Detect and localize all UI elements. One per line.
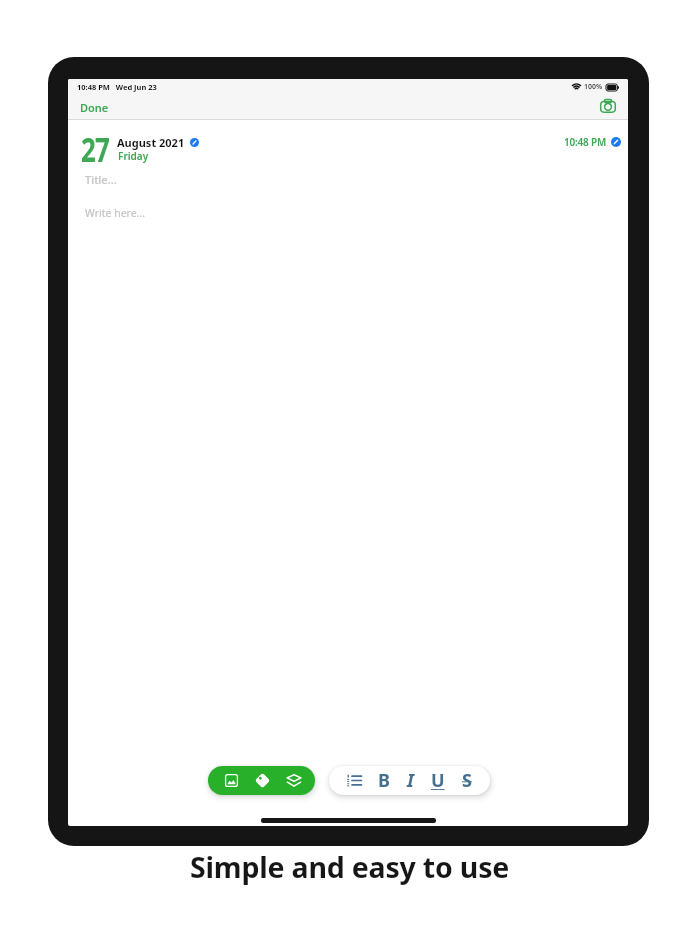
staticText: 27 [81,126,109,172]
staticText: Write here... [85,206,146,220]
staticText: 10:48 PM [564,135,607,149]
staticText: I [407,768,414,793]
staticText: Simple and easy to use [190,848,510,887]
staticText: 100% [584,82,603,92]
staticText: August 2021 [117,135,185,150]
button[interactable] [600,99,616,113]
staticText: Friday [118,149,149,163]
button[interactable] [208,766,315,795]
staticText: Done [80,100,109,115]
staticText: B [378,768,390,793]
staticText: Title... [85,172,117,187]
staticText: U [431,768,445,793]
staticText: 10:48 PM Wed Jun 23 [77,82,157,92]
button[interactable]: B [329,766,490,795]
staticText: S [462,768,472,793]
button[interactable]: Done [80,100,109,115]
